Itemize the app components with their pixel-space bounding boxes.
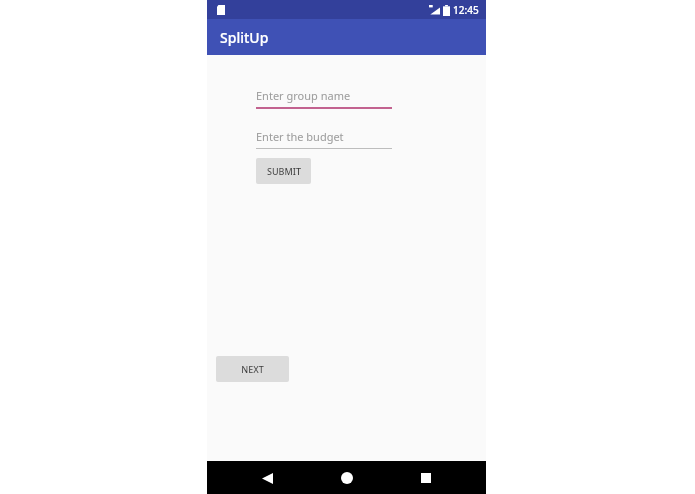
button[interactable]: Home	[333, 464, 361, 492]
staticText: SplitUp	[220, 28, 269, 47]
button[interactable]: SUBMIT	[256, 158, 311, 184]
button[interactable]: NEXT	[216, 356, 289, 382]
button[interactable]: Enter the budget	[256, 129, 392, 149]
button[interactable]: Recent apps	[412, 464, 440, 492]
button[interactable]: Enter group name	[256, 88, 392, 109]
staticText: 12:45	[453, 3, 479, 17]
staticText: Enter group name	[256, 88, 351, 103]
staticText: SUBMIT	[267, 165, 301, 177]
button[interactable]: Back	[253, 464, 281, 492]
staticText: Enter the budget	[256, 129, 344, 144]
staticText: NEXT	[241, 363, 264, 375]
